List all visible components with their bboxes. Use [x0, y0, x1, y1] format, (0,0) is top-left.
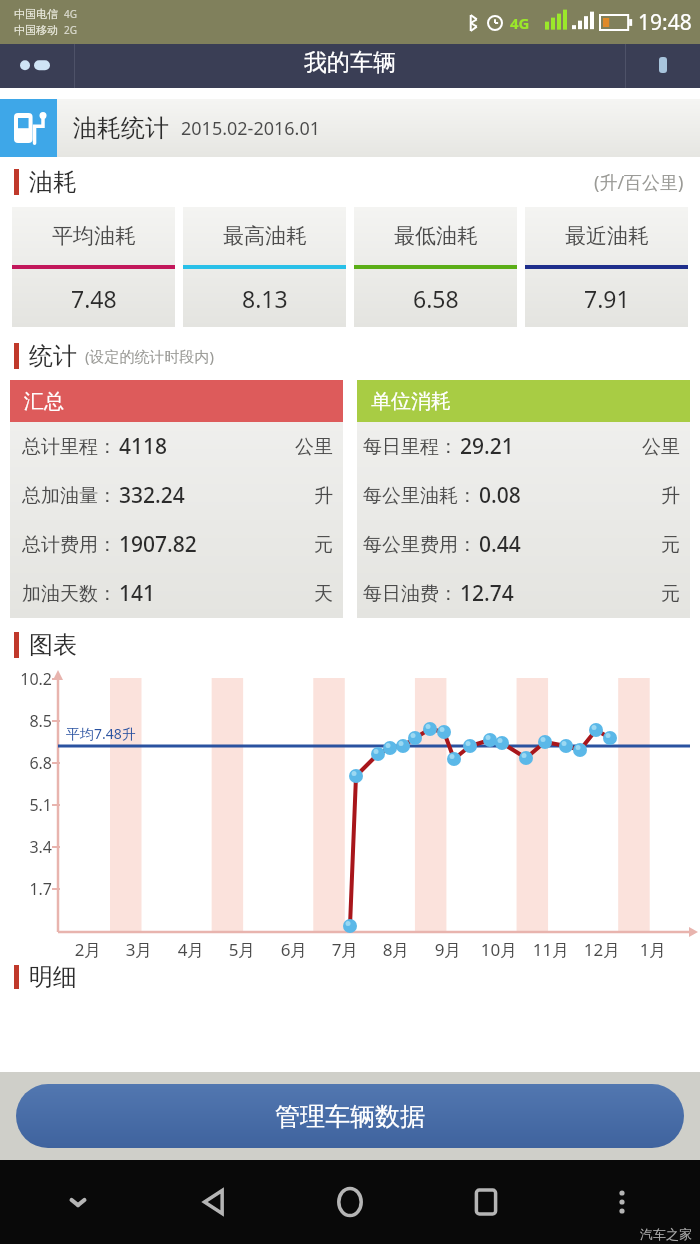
staticText: 单位消耗: [371, 389, 451, 414]
staticText: 管理车辆数据: [275, 1101, 425, 1132]
staticText: 7.48: [71, 283, 117, 314]
staticText: 公里: [295, 435, 333, 459]
staticText: 8月: [372, 938, 420, 961]
staticText: 每公里油耗：: [363, 484, 477, 508]
staticText: 11月: [527, 938, 575, 961]
staticText: 元: [661, 533, 680, 557]
button[interactable]: Recents: [418, 1160, 554, 1244]
staticText: 图表: [29, 630, 77, 660]
staticText: 19:48: [638, 8, 692, 37]
staticText: 汽车之家: [640, 1226, 692, 1242]
staticText: 4月: [167, 938, 215, 961]
staticText: 天: [314, 582, 333, 606]
button[interactable]: 平均油耗: [12, 207, 175, 327]
button[interactable]: 油耗统计: [0, 99, 700, 157]
staticText: 141: [119, 579, 156, 608]
staticText: 每日里程：: [363, 435, 458, 459]
staticText: 2015.02-2016.01: [181, 116, 320, 141]
button[interactable]: 最高油耗: [183, 207, 346, 327]
staticText: 最近油耗: [565, 223, 649, 249]
button[interactable]: Back: [146, 1160, 282, 1244]
button[interactable]: More options: [554, 1160, 690, 1244]
staticText: 油耗统计: [73, 113, 169, 143]
staticText: 0.08: [479, 481, 521, 510]
button[interactable]: 汇总: [10, 380, 343, 618]
staticText: 最高油耗: [223, 223, 307, 249]
staticText: 1907.82: [119, 530, 197, 559]
staticText: 总计费用：: [22, 533, 117, 557]
button[interactable]: More: [626, 44, 700, 88]
staticText: 中国电信: [14, 7, 58, 21]
staticText: 4G: [64, 7, 77, 21]
staticText: 5.1: [8, 794, 52, 816]
staticText: 升: [314, 484, 333, 508]
button[interactable]: 最近油耗: [525, 207, 688, 327]
staticText: 明细: [29, 962, 77, 992]
button[interactable]: 最低油耗: [354, 207, 517, 327]
staticText: 10月: [475, 938, 523, 961]
staticText: 6.8: [8, 752, 52, 774]
staticText: 公里: [642, 435, 680, 459]
button[interactable]: 管理车辆数据: [16, 1084, 684, 1148]
staticText: 平均油耗: [52, 223, 136, 249]
staticText: 2月: [64, 938, 112, 961]
staticText: 汇总: [24, 389, 64, 414]
staticText: 4G: [510, 13, 530, 33]
staticText: 29.21: [460, 432, 514, 461]
staticText: 统计: [29, 341, 77, 371]
staticText: 加油天数：: [22, 582, 117, 606]
staticText: 每日油费：: [363, 582, 458, 606]
staticText: 12.74: [460, 579, 514, 608]
staticText: 最低油耗: [394, 223, 478, 249]
staticText: 12月: [578, 938, 626, 961]
staticText: 5月: [218, 938, 266, 961]
staticText: 6月: [270, 938, 318, 961]
staticText: 1月: [629, 938, 677, 961]
staticText: 332.24: [119, 481, 185, 510]
staticText: (升/百公里): [594, 170, 684, 195]
button[interactable]: Menu: [0, 44, 74, 88]
button[interactable]: Home: [282, 1160, 418, 1244]
staticText: 元: [314, 533, 333, 557]
staticText: 10.2: [8, 668, 52, 690]
staticText: 7.91: [584, 283, 630, 314]
staticText: 8.13: [242, 283, 288, 314]
staticText: 中国移动: [14, 23, 58, 37]
staticText: 2G: [64, 23, 77, 37]
staticText: 1.7: [8, 878, 52, 900]
staticText: 总加油量：: [22, 484, 117, 508]
staticText: 0.44: [479, 530, 521, 559]
staticText: 升: [661, 484, 680, 508]
staticText: (设定的统计时段内): [85, 346, 215, 366]
staticText: 8.5: [8, 710, 52, 732]
staticText: 元: [661, 582, 680, 606]
staticText: 每公里费用：: [363, 533, 477, 557]
staticText: 4118: [119, 432, 168, 461]
staticText: 7月: [321, 938, 369, 961]
staticText: 我的车辆: [304, 48, 396, 77]
staticText: 总计里程：: [22, 435, 117, 459]
staticText: 3月: [115, 938, 163, 961]
button[interactable]: 单位消耗: [357, 380, 690, 618]
staticText: 9月: [424, 938, 472, 961]
staticText: 油耗: [29, 167, 77, 197]
staticText: 平均7.48升: [66, 724, 136, 743]
button[interactable]: Hide: [10, 1160, 146, 1244]
staticText: 3.4: [8, 836, 52, 858]
staticText: 6.58: [413, 283, 459, 314]
